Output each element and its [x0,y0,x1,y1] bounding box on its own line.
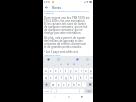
button[interactable]: Google Assistant [75,57,80,62]
staticText: ↓ [87,63,90,66]
staticText: x [58,83,60,87]
button[interactable]: Backspace [87,82,93,87]
button[interactable]: a [43,68,48,73]
button[interactable]: Key 4 [72,62,77,67]
staticText: k [80,76,82,80]
staticText: o [85,69,87,73]
staticText: f [61,76,62,80]
button[interactable]: Shift [43,82,50,87]
staticText: i [81,69,82,73]
staticText: j [76,76,77,80]
staticText: u [75,69,77,73]
staticText: p [90,69,92,73]
button[interactable]: Sticker [85,57,90,62]
staticText: Traduire le texte [44,54,60,57]
button[interactable]: Settings [46,57,51,62]
staticText: ' [84,83,85,87]
button[interactable]: q [43,75,48,80]
button[interactable]: Enter [85,89,93,93]
staticText: ‹ [47,63,48,66]
staticText: z [50,69,52,73]
staticText: r [60,69,62,73]
button[interactable]: n [77,82,81,87]
button[interactable]: f [59,75,63,80]
button[interactable]: o [84,68,88,73]
staticText: • Les 3 pays sont alliés mis [44,50,78,54]
button[interactable]: h [69,75,73,80]
staticText: n [78,83,80,87]
staticText: , [54,89,55,93]
button[interactable]: w [51,82,56,87]
button[interactable]: m [89,75,93,80]
button[interactable]: l [84,75,88,80]
button[interactable]: t [64,68,68,73]
button[interactable]: j [74,75,78,80]
button[interactable]: Back [52,95,57,99]
button[interactable]: Clipboard [56,57,61,62]
staticText: m [90,76,93,80]
button[interactable]: Key 2 [59,62,64,67]
button[interactable]: . [80,89,84,93]
staticText: l [86,76,87,80]
button[interactable]: u [74,68,78,73]
button[interactable]: Home [66,95,71,99]
staticText: e [55,69,57,73]
staticText: ⌕ [54,64,56,66]
button[interactable]: ' [82,82,86,87]
button[interactable]: i [79,68,83,73]
button[interactable]: Back [43,4,50,11]
button[interactable]: c [62,82,66,87]
staticText: Donc encore une fois PNS 100% est 100 à … [44,16,90,35]
staticText: . [82,89,83,93]
staticText: s [50,76,52,80]
staticText: w [52,83,55,87]
button[interactable]: d [54,75,58,80]
button[interactable]: x [57,82,61,87]
button[interactable]: k [79,75,83,80]
staticText: ?123 [45,90,49,92]
staticText: g [65,76,67,80]
button[interactable]: ?123 [43,89,51,93]
staticText: ⊕ [67,63,70,66]
staticText: b [73,83,75,87]
button[interactable]: y [69,68,73,73]
staticText: q [45,76,47,80]
staticText: Sommaire : Podcast 82 Vaillant(h.ch) sur… [44,9,89,15]
staticText: ▭ [60,63,63,66]
button[interactable]: e [54,68,58,73]
button[interactable]: p [89,68,93,73]
staticText: Notes [52,6,62,10]
button[interactable]: Key 6 [86,62,91,67]
button[interactable]: b [72,82,76,87]
staticText: d [55,76,57,80]
button[interactable]: , [52,89,56,93]
staticText: ⊟ [73,63,76,66]
button[interactable]: Key 5 [79,62,84,67]
button[interactable]: Key 0 [45,62,50,67]
staticText: − [81,63,83,66]
button[interactable]: Key 3 [66,62,71,67]
button[interactable]: z [49,68,53,73]
button[interactable]: s [49,75,53,80]
button[interactable]: g [64,75,68,80]
button[interactable]: Recents [79,95,84,99]
staticText: t [65,69,67,73]
staticText: h [70,76,72,80]
staticText: c [63,83,65,87]
staticText: a [45,69,47,73]
staticText: De plus, cela a permis de sauver des mil… [44,36,87,49]
button[interactable]: r [59,68,63,73]
staticText: y [70,69,72,73]
button[interactable]: Key 1 [52,62,57,67]
button[interactable]: v [67,82,71,87]
staticText: v [68,83,70,87]
